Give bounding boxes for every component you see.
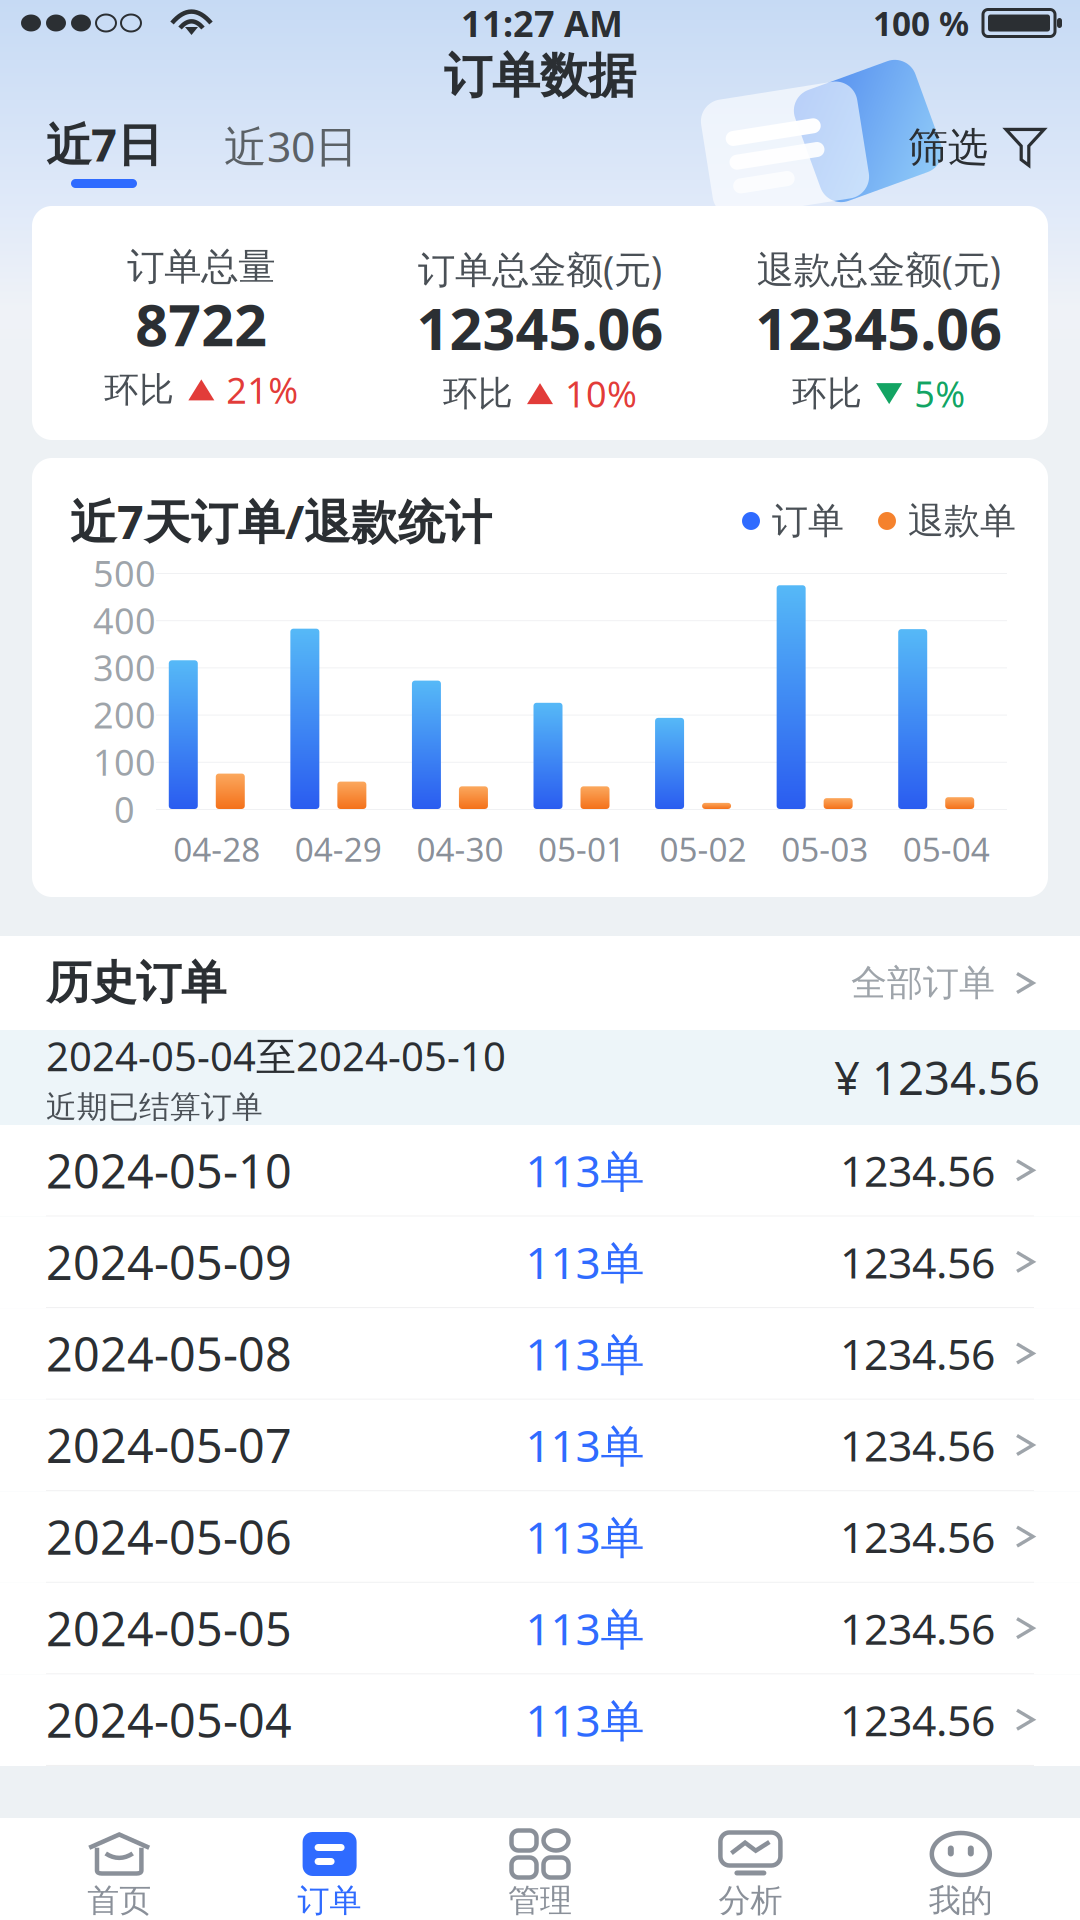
staticText: 1234.56 — [840, 1142, 995, 1199]
staticText: 1234.56 — [840, 1233, 995, 1290]
staticText: 2024-05-06 — [46, 1506, 292, 1568]
staticText: 1234.56 — [840, 1325, 995, 1382]
staticText: ¥ 1234.56 — [834, 1047, 1040, 1108]
staticText: 21% — [226, 366, 298, 414]
staticText: 200 — [93, 691, 156, 738]
staticText: 2024-05-04 — [46, 1689, 292, 1751]
button[interactable]: 分析 — [645, 1818, 856, 1920]
button[interactable]: 历史订单 — [0, 936, 1080, 1030]
staticText: 2024-05-10 — [46, 1139, 292, 1201]
button[interactable]: 2024-05-04 — [0, 1674, 1080, 1766]
staticText: 113单 — [525, 1690, 644, 1749]
staticText: 环比 — [443, 372, 513, 415]
staticText: 05-04 — [903, 827, 990, 871]
staticText: 5% — [914, 370, 965, 417]
staticText: 环比 — [104, 369, 174, 411]
staticText: 退款单 — [908, 499, 1016, 543]
staticText: 113单 — [525, 1141, 644, 1199]
staticText: 113单 — [525, 1416, 644, 1474]
staticText: 近30日 — [224, 117, 358, 174]
button[interactable]: 近30日 — [162, 117, 358, 188]
button[interactable]: 管理 — [435, 1818, 645, 1920]
button[interactable]: 2024-05-07 — [0, 1400, 1080, 1491]
staticText: 8722 — [135, 286, 267, 362]
staticText: 400 — [93, 596, 156, 644]
staticText: 2024-05-08 — [46, 1322, 292, 1384]
staticText: 我的 — [929, 1881, 993, 1920]
staticText: 05-03 — [781, 827, 868, 871]
staticText: 100 — [93, 738, 156, 786]
staticText: 管理 — [508, 1881, 572, 1920]
staticText: 12345.06 — [755, 290, 1002, 366]
button[interactable]: 订单 — [224, 1818, 435, 1920]
staticText: 300 — [93, 643, 156, 691]
staticText: 05-01 — [538, 827, 625, 871]
staticText: 1234.56 — [840, 1600, 995, 1656]
staticText: 10% — [565, 370, 637, 417]
staticText: 2024-05-07 — [46, 1414, 292, 1476]
staticText: 订单 — [772, 499, 844, 543]
staticText: 首页 — [87, 1881, 151, 1920]
staticText: 环比 — [792, 372, 862, 415]
staticText: 113单 — [525, 1324, 644, 1383]
staticText: 订单 — [298, 1881, 362, 1920]
staticText: 退款总金额(元) — [757, 244, 1001, 294]
button[interactable]: 2024-05-09 — [0, 1217, 1080, 1308]
staticText: 100 % — [873, 1, 969, 45]
button[interactable]: 近7日 — [46, 114, 162, 188]
button[interactable]: 2024-05-10 — [0, 1125, 1080, 1217]
staticText: 1234.56 — [840, 1691, 995, 1748]
staticText: 11:27 AM — [461, 0, 623, 47]
staticText: 订单总量 — [127, 244, 275, 290]
staticText: 订单数据 — [444, 46, 636, 105]
button[interactable]: 首页 — [14, 1818, 224, 1920]
staticText: 分析 — [718, 1881, 782, 1920]
staticText: 2024-05-04至2024-05-10 — [46, 1029, 506, 1082]
staticText: 05-02 — [660, 827, 747, 871]
staticText: 04-30 — [416, 827, 503, 871]
staticText: 历史订单 — [46, 955, 226, 1011]
staticText: 近7天订单/退款统计 — [70, 490, 492, 552]
staticText: 113单 — [525, 1233, 644, 1291]
staticText: 订单总金额(元) — [418, 244, 662, 294]
button[interactable]: 2024-05-05 — [0, 1583, 1080, 1674]
staticText: 近期已结算订单 — [46, 1088, 263, 1126]
button[interactable]: 筛选 — [908, 123, 1044, 188]
staticText: 1234.56 — [840, 1417, 995, 1473]
staticText: 1234.56 — [840, 1508, 995, 1565]
staticText: 113单 — [525, 1599, 644, 1657]
staticText: 2024-05-05 — [46, 1597, 292, 1659]
staticText: 0 — [114, 785, 135, 833]
staticText: 04-28 — [173, 827, 260, 871]
button[interactable]: 我的 — [856, 1818, 1066, 1920]
button[interactable]: 2024-05-08 — [0, 1308, 1080, 1400]
staticText: 2024-05-09 — [46, 1231, 292, 1293]
staticText: 04-29 — [295, 827, 382, 871]
button[interactable]: 2024-05-06 — [0, 1491, 1080, 1583]
staticText: 12345.06 — [416, 290, 663, 366]
staticText: 筛选 — [908, 123, 988, 172]
staticText: 113单 — [525, 1507, 644, 1566]
staticText: 500 — [93, 549, 156, 597]
staticText: 近7日 — [46, 114, 162, 174]
staticText: 全部订单 — [851, 961, 995, 1005]
